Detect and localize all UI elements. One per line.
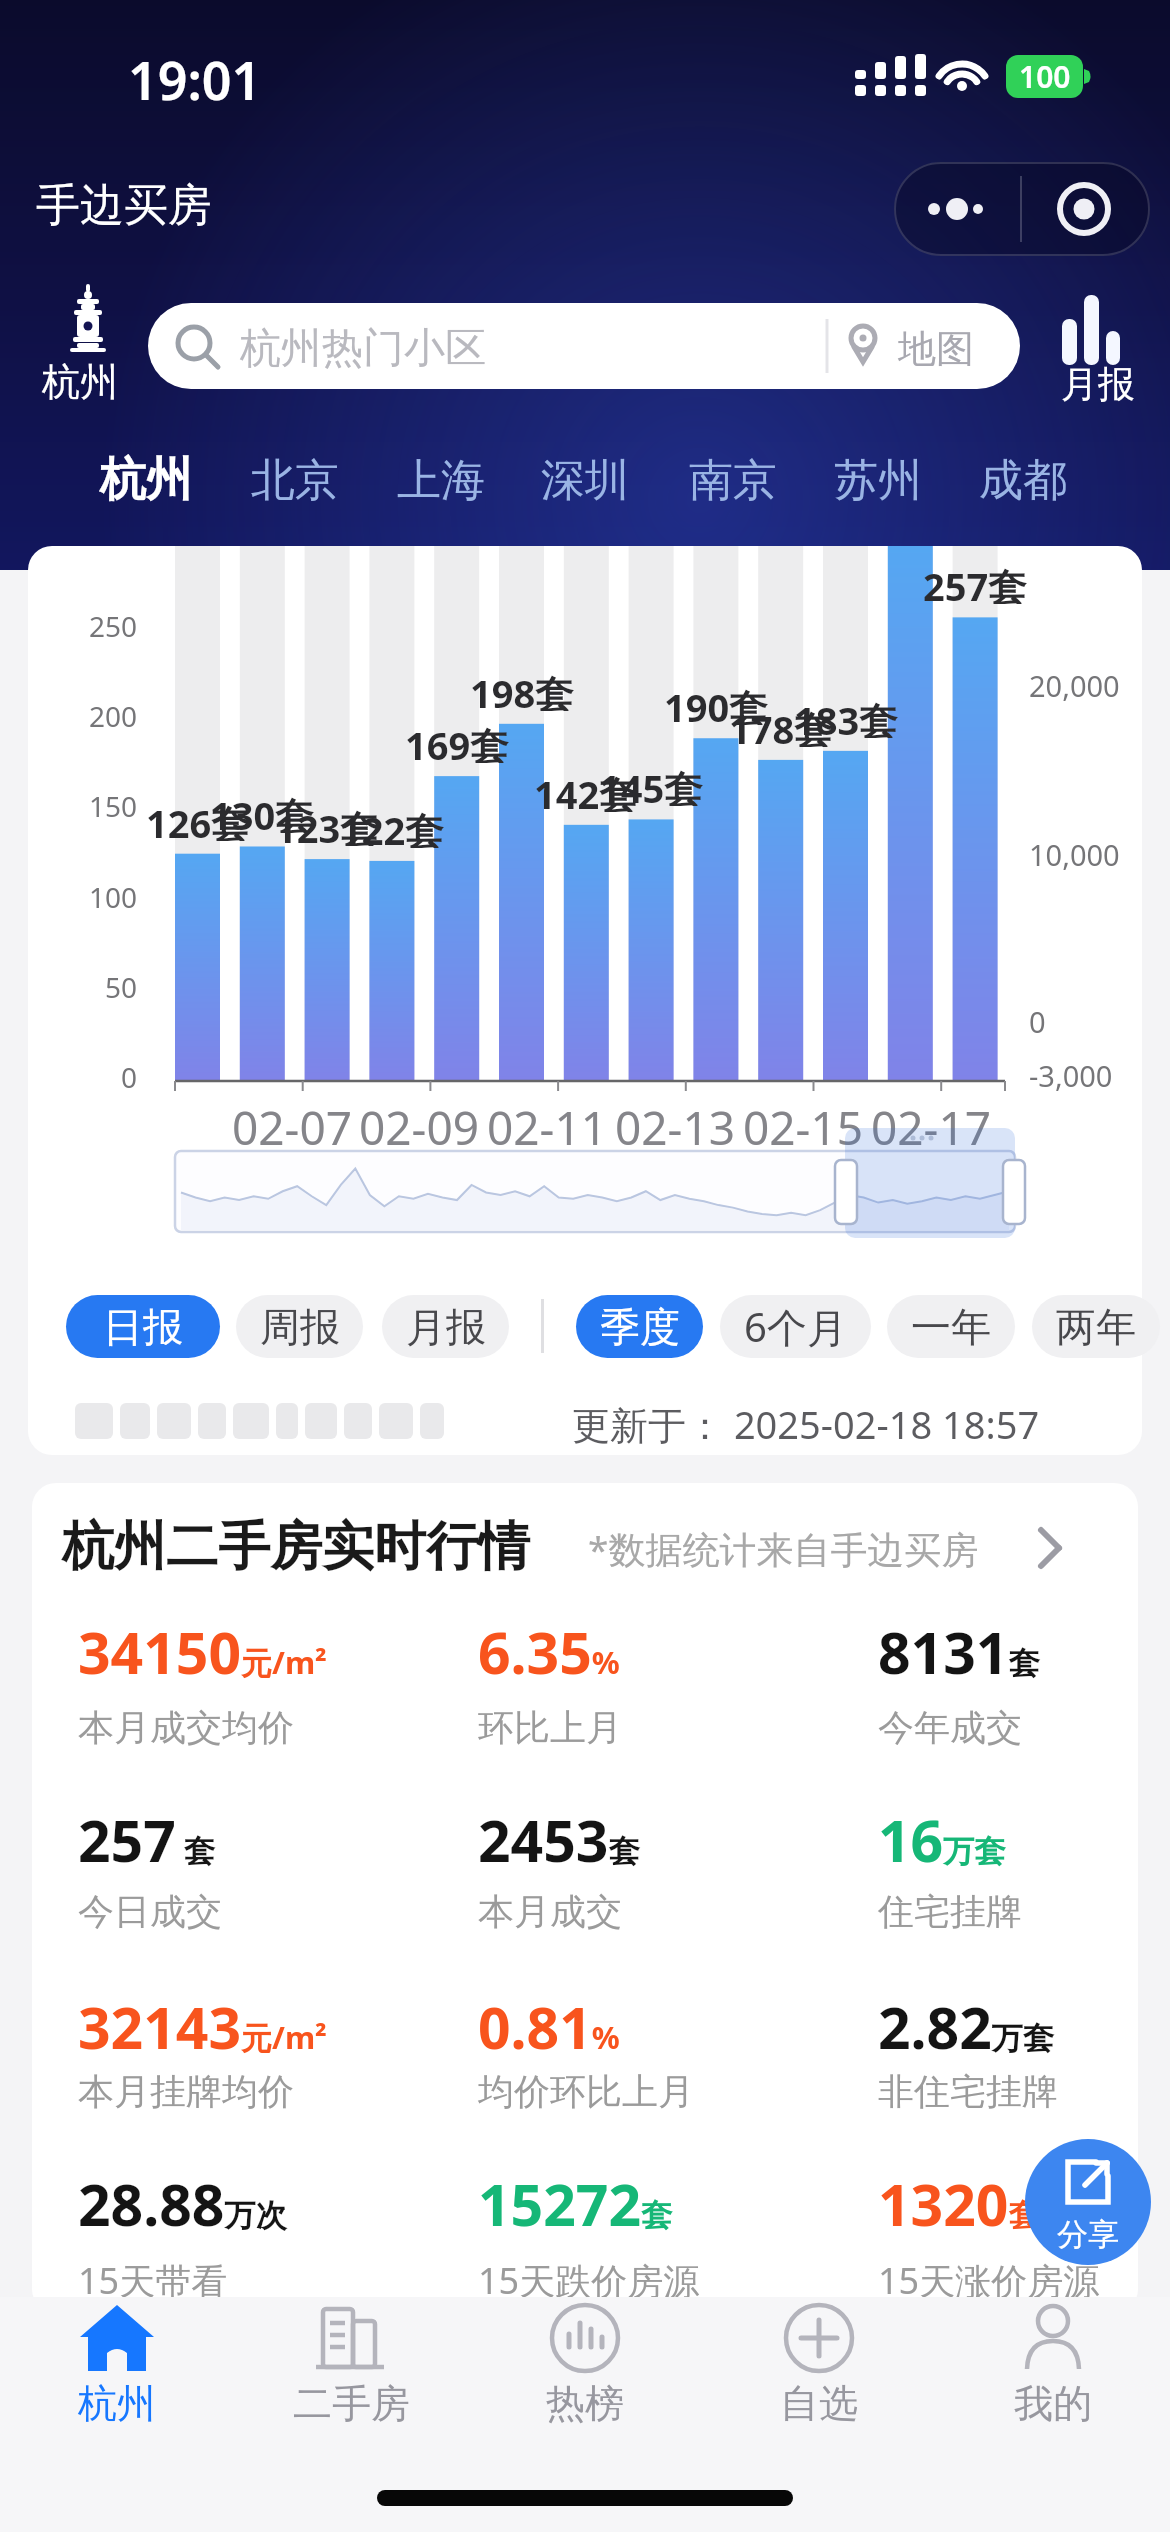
staticText: 02-17 (871, 1096, 992, 1146)
staticText: 02-11 (487, 1096, 608, 1146)
staticText: 今年成交 (878, 1705, 1022, 1750)
staticText: 15天涨价房源 (878, 2256, 1100, 2305)
button[interactable] (32, 1483, 1138, 2313)
staticText: 15272套 (478, 2165, 673, 2243)
staticText: 杭州 (42, 358, 118, 406)
staticText: 月报 (1056, 361, 1140, 408)
staticText: 0 (1029, 1002, 1046, 1041)
button[interactable] (894, 162, 1150, 256)
staticText: 02-07 (232, 1096, 353, 1146)
staticText: 上海 (397, 453, 485, 508)
staticText: 日报 (103, 1302, 183, 1352)
button[interactable]: 月报 (382, 1295, 509, 1358)
staticText: 126套 (146, 797, 250, 841)
staticText: 我的 (1014, 2379, 1092, 2428)
staticText: 住宅挂牌 (878, 1889, 1022, 1934)
staticText: 均价环比上月 (478, 2069, 694, 2114)
staticText: 杭州二手房实时行情 (62, 1514, 530, 1580)
staticText: 142套 (534, 768, 638, 812)
staticText: 02-15 (743, 1096, 864, 1146)
staticText: 15天跌价房源 (478, 2256, 700, 2305)
staticText: 123套 (275, 802, 379, 846)
button[interactable]: 南京 (663, 448, 803, 512)
button[interactable]: 深圳 (515, 448, 655, 512)
staticText: 环比上月 (478, 1705, 622, 1750)
staticText: 257套 (923, 560, 1027, 604)
staticText: 150 (89, 787, 138, 825)
button[interactable]: 日报 (66, 1295, 220, 1358)
staticText: 地图 (898, 325, 974, 373)
staticText: 北京 (251, 453, 339, 508)
staticText: 非住宅挂牌 (878, 2069, 1058, 2114)
staticText: 0 (121, 1058, 138, 1096)
staticText: 0.81% (478, 1988, 620, 2066)
staticText: 200 (89, 697, 138, 735)
staticText: 02-13 (615, 1096, 736, 1146)
staticText: 二手房 (293, 2379, 410, 2428)
staticText: 50 (105, 968, 138, 1006)
staticText: 本月成交 (478, 1889, 622, 1934)
button[interactable]: 季度 (576, 1295, 703, 1358)
staticText: 10,000 (1029, 835, 1120, 874)
button[interactable]: 热榜 (485, 2297, 685, 2437)
staticText: 本月成交均价 (78, 1705, 294, 1750)
staticText: 杭州 (78, 2379, 156, 2428)
staticText: 一年 (911, 1302, 991, 1352)
staticText: 100 (89, 878, 138, 916)
staticText: 苏州 (834, 453, 922, 508)
staticText: 122套 (340, 804, 444, 848)
button[interactable]: 北京 (225, 448, 365, 512)
staticText: 16万套 (878, 1801, 1006, 1879)
staticText: 分享 (1057, 2215, 1119, 2254)
staticText: 02-09 (359, 1096, 480, 1146)
staticText: 2.82万套 (878, 1988, 1054, 2066)
staticText: 198套 (470, 667, 574, 711)
staticText: 季度 (600, 1302, 680, 1352)
staticText: 15天带看 (78, 2256, 228, 2305)
staticText: 100 (1019, 56, 1071, 97)
button[interactable]: 一年 (887, 1295, 1015, 1358)
staticText: 杭州热门小区 (240, 323, 486, 375)
staticText: 2453套 (478, 1801, 640, 1879)
staticText: 169套 (405, 719, 509, 763)
staticText: 6个月 (744, 1299, 847, 1354)
button[interactable]: 二手房 (251, 2297, 451, 2437)
button[interactable]: 分享 (1025, 2139, 1151, 2265)
staticText: 今日成交 (78, 1889, 222, 1934)
staticText: 手边买房 (36, 178, 212, 233)
staticText: *数据统计来自手边买房 (588, 1523, 979, 1574)
button[interactable]: 月报 (1048, 295, 1148, 405)
staticText: 178套 (729, 703, 833, 747)
button[interactable]: 成都 (953, 448, 1093, 512)
staticText: 130套 (210, 789, 314, 833)
button[interactable]: 周报 (236, 1295, 363, 1358)
staticText: 更新于： 2025-02-18 18:57 (572, 1398, 1040, 1450)
button[interactable]: 杭州热门小区 (148, 303, 1020, 389)
staticText: 深圳 (541, 453, 629, 508)
staticText: 20,000 (1029, 666, 1120, 705)
staticText: 145套 (599, 762, 703, 806)
button[interactable]: 我的 (953, 2297, 1153, 2437)
staticText: 32143元/m² (78, 1988, 327, 2066)
staticText: 成都 (979, 453, 1067, 508)
button[interactable]: 杭州 (76, 448, 216, 512)
button[interactable]: 自选 (719, 2297, 919, 2437)
staticText: 两年 (1056, 1302, 1136, 1352)
staticText: 杭州 (100, 451, 192, 509)
staticText: 183套 (794, 694, 898, 738)
staticText: 19:01 (128, 44, 262, 115)
staticText: 6.35% (478, 1613, 620, 1691)
staticText: 190套 (664, 681, 768, 725)
staticText: 1320套 (878, 2165, 1040, 2243)
button[interactable]: 两年 (1032, 1295, 1160, 1358)
button[interactable]: 6个月 (720, 1295, 871, 1358)
staticText: 34150元/m² (78, 1613, 327, 1691)
button[interactable]: 苏州 (808, 448, 948, 512)
staticText: 月报 (406, 1302, 486, 1352)
staticText: 28.88万次 (78, 2165, 287, 2243)
staticText: 周报 (260, 1302, 340, 1352)
button[interactable]: 上海 (371, 448, 511, 512)
staticText: 257 套 (78, 1801, 215, 1879)
button[interactable]: 杭州 (17, 2297, 217, 2437)
staticText: -3,000 (1029, 1056, 1113, 1095)
